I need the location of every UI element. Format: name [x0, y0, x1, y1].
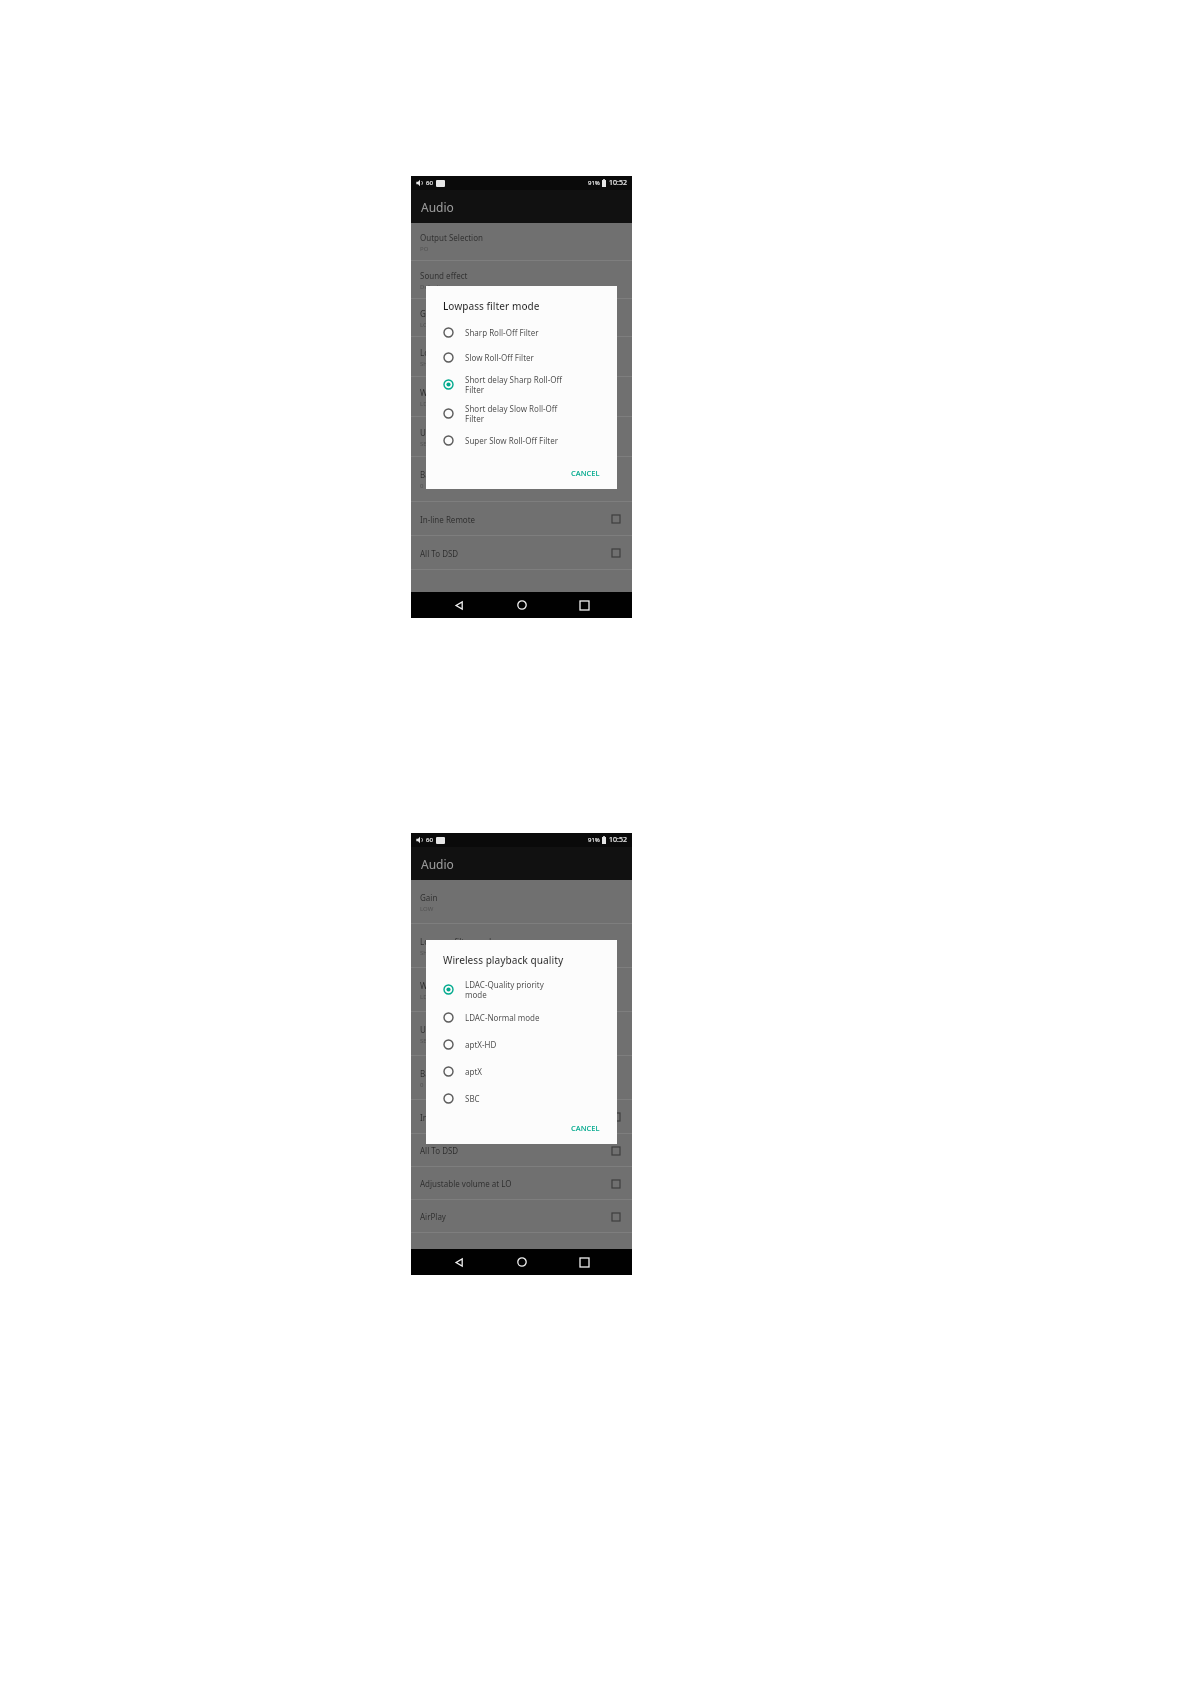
button[interactable]: Gain [411, 299, 632, 337]
staticText: Sound effect [420, 270, 468, 281]
staticText: Short delay [420, 360, 452, 368]
staticText: Audio [421, 199, 454, 215]
staticText: Output Selection [420, 232, 483, 243]
button[interactable]: USB Audio [411, 1012, 632, 1056]
button[interactable]: Gain [411, 880, 632, 924]
staticText: Balance [420, 469, 450, 480]
button[interactable]: Recent apps [569, 1249, 599, 1275]
button[interactable]: In-line Remote [411, 502, 632, 536]
button[interactable]: Wireless playback quality [411, 377, 632, 417]
button[interactable]: Recent apps [569, 592, 599, 618]
staticText: USB Audio [420, 1024, 460, 1035]
button[interactable]: All To DSD [411, 536, 632, 570]
staticText: CANCEL [571, 1123, 600, 1133]
staticText: Wireless playback quality [420, 387, 515, 398]
staticText: USB Audio [420, 427, 460, 438]
staticText: LDAC [420, 400, 435, 408]
staticText: Wireless playback quality [443, 953, 564, 967]
button[interactable]: aptX-HD [443, 1031, 607, 1058]
staticText: LOW [420, 905, 434, 913]
button[interactable]: LDAC-Normal mode [443, 1004, 607, 1031]
staticText: 0 [420, 482, 424, 490]
staticText: Sharp Roll-Off Filter [465, 327, 539, 338]
button[interactable]: Lowpass filter mode [411, 924, 632, 968]
button[interactable]: Balance [411, 457, 632, 502]
staticText: Audio [421, 856, 454, 872]
staticText: 91% [588, 179, 600, 187]
staticText: SELECT [420, 440, 441, 448]
staticText: LDAC-Normal mode [465, 1012, 540, 1023]
staticText: Balance [420, 1068, 450, 1079]
staticText: In-line Remote [420, 514, 476, 525]
staticText: Short delay [420, 949, 452, 957]
button[interactable]: CANCEL [566, 464, 605, 482]
button[interactable]: Sharp Roll-Off Filter [443, 320, 607, 345]
button[interactable]: Super Slow Roll-Off Filter [443, 428, 607, 453]
staticText: Short delay Sharp Roll-Off Filter [465, 374, 562, 395]
button[interactable]: AirPlay [411, 1200, 632, 1233]
staticText: LDAC [420, 993, 435, 1001]
staticText: 91% [588, 836, 600, 844]
staticText: aptX-HD [465, 1039, 497, 1050]
staticText: Slow Roll-Off Filter [465, 352, 534, 363]
button[interactable]: Wireless playback quality [411, 968, 632, 1012]
staticText: Wireless playback quality [420, 980, 515, 991]
staticText: Lowpass filter mode [420, 347, 496, 358]
button[interactable]: Lowpass filter mode [411, 337, 632, 377]
button[interactable]: Home [507, 1249, 537, 1275]
staticText: Default [420, 283, 441, 291]
staticText: Lowpass filter mode [443, 299, 540, 313]
staticText: Adjustable volume at LO [420, 1178, 512, 1189]
staticText: Gain [420, 308, 438, 319]
staticText: LOW [420, 321, 434, 329]
staticText: 60 [426, 836, 433, 844]
staticText: aptX [465, 1066, 482, 1077]
button[interactable]: Home [507, 592, 537, 618]
staticText: In-line Remote [420, 1112, 476, 1123]
button[interactable]: Short delay Sharp Roll-Off Filter [443, 370, 607, 399]
button[interactable]: Back [444, 1249, 474, 1275]
button[interactable]: Sound effect [411, 261, 632, 299]
staticText: SBC [465, 1093, 480, 1104]
staticText: All To DSD [420, 1145, 459, 1156]
button[interactable]: Back [444, 592, 474, 618]
button[interactable]: Balance [411, 1056, 632, 1100]
staticText: 60 [426, 179, 433, 187]
button[interactable]: Adjustable volume at LO [411, 1167, 632, 1200]
button[interactable]: SBC [443, 1085, 607, 1112]
button[interactable]: Slow Roll-Off Filter [443, 345, 607, 370]
staticText: 10:52 [609, 178, 627, 188]
staticText: Gain [420, 892, 438, 903]
button[interactable]: USB Audio [411, 417, 632, 457]
staticText: All To DSD [420, 548, 459, 559]
staticText: PO [420, 245, 429, 253]
button[interactable]: Short delay Slow Roll-Off Filter [443, 399, 607, 428]
staticText: Lowpass filter mode [420, 936, 496, 947]
staticText: AirPlay [420, 1211, 446, 1222]
button[interactable]: In-line Remote [411, 1100, 632, 1134]
staticText: LDAC-Quality priority mode [465, 979, 544, 1000]
staticText: CANCEL [571, 468, 600, 478]
button[interactable]: CANCEL [566, 1119, 605, 1137]
staticText: Short delay Slow Roll-Off Filter [465, 403, 558, 424]
staticText: 10:52 [609, 835, 627, 845]
button[interactable]: Output Selection [411, 223, 632, 261]
button[interactable]: LDAC-Quality priority mode [443, 974, 607, 1004]
staticText: 0 [420, 1081, 424, 1089]
button[interactable]: All To DSD [411, 1134, 632, 1167]
button[interactable]: aptX [443, 1058, 607, 1085]
staticText: Super Slow Roll-Off Filter [465, 435, 558, 446]
staticText: SELECT [420, 1037, 441, 1045]
